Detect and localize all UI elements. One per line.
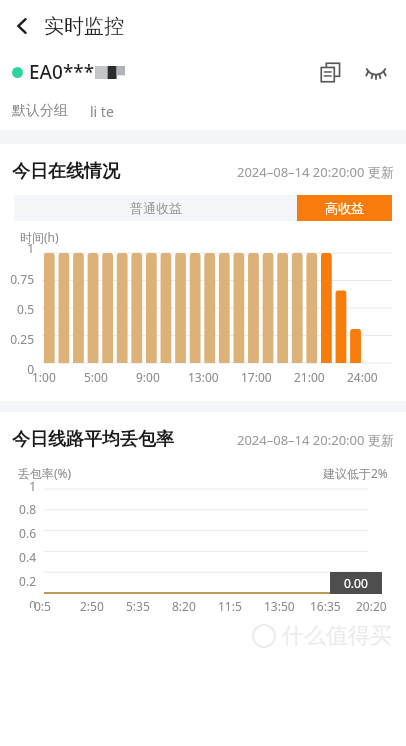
staticText: 普通收益 <box>130 200 182 216</box>
staticText: 21:00 <box>294 369 325 385</box>
staticText: 8:20 <box>172 598 196 614</box>
staticText: 0.8 <box>0 501 36 517</box>
button[interactable]: Back <box>0 0 44 52</box>
staticText: 1 <box>0 478 36 494</box>
staticText: 默认分组 <box>12 102 68 120</box>
staticText: 24:00 <box>347 369 378 385</box>
button[interactable]: Copy <box>312 54 348 90</box>
staticText: 0.5 <box>0 301 34 317</box>
staticText: 2:50 <box>80 598 104 614</box>
staticText: 2024–08–14 20:20:00 更新 <box>237 163 394 181</box>
staticText: 5:00 <box>84 369 108 385</box>
staticText: 建议低于2% <box>323 465 388 481</box>
staticText: 9:00 <box>136 369 160 385</box>
staticText: 20:20 <box>356 598 387 614</box>
staticText: 11:5 <box>218 598 242 614</box>
staticText: 5:35 <box>126 598 150 614</box>
staticText: 丢包率(%) <box>18 465 72 481</box>
staticText: 1 <box>0 240 34 256</box>
staticText: 13:50 <box>264 598 295 614</box>
button[interactable]: Hide <box>358 54 394 90</box>
staticText: 今日在线情况 <box>12 160 120 183</box>
staticText: 0 <box>0 361 34 377</box>
staticText: 时间(h) <box>20 229 59 245</box>
staticText: 17:00 <box>241 369 272 385</box>
staticText: 16:35 <box>310 598 341 614</box>
button[interactable]: 普通收益 <box>14 195 297 221</box>
staticText: 0.75 <box>0 271 34 287</box>
staticText: 实时监控 <box>44 14 124 39</box>
staticText: 今日线路平均丢包率 <box>12 428 174 451</box>
staticText: 0 <box>0 597 36 608</box>
staticText: 0.2 <box>0 573 36 589</box>
staticText: 高收益 <box>325 200 364 216</box>
staticText: 1:00 <box>32 369 56 385</box>
staticText: 13:00 <box>188 369 219 385</box>
staticText: 什么值得买 <box>282 622 392 650</box>
staticText: 0.00 <box>344 575 368 591</box>
staticText: 0.25 <box>0 331 34 347</box>
staticText: 2024–08–14 20:20:00 更新 <box>237 431 394 449</box>
staticText: EA0*** <box>29 59 95 85</box>
staticText: li te <box>90 102 114 121</box>
staticText: 0.6 <box>0 525 36 541</box>
staticText: 0.4 <box>0 549 36 565</box>
button[interactable]: 高收益 <box>297 195 392 221</box>
staticText: 0:5 <box>34 598 51 614</box>
